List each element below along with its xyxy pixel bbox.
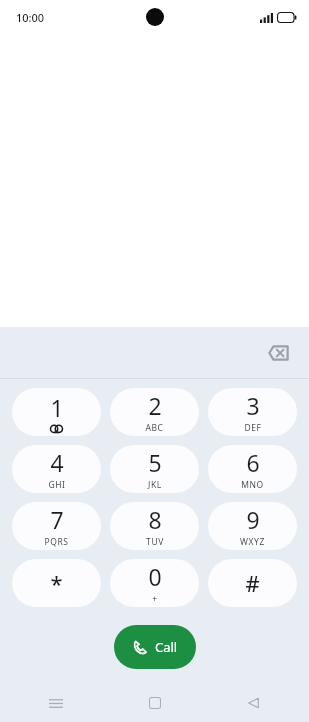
button[interactable]: 5 (110, 445, 199, 493)
staticText: 5 (148, 447, 162, 478)
staticText: WXYZ (240, 536, 265, 548)
staticText: 2 (148, 390, 162, 421)
button[interactable]: # (208, 559, 297, 607)
staticText: TUV (146, 536, 164, 548)
staticText: 1 (50, 392, 64, 423)
button[interactable]: 7 (12, 502, 101, 550)
button[interactable]: * (12, 559, 101, 607)
staticText: DEF (244, 422, 262, 434)
staticText: ABC (145, 422, 164, 434)
staticText: 3 (246, 390, 260, 421)
staticText: 8 (148, 504, 162, 535)
button[interactable]: Backspace (261, 336, 295, 370)
button[interactable]: 4 (12, 445, 101, 493)
button[interactable]: 9 (208, 502, 297, 550)
staticText: 9 (246, 504, 260, 535)
staticText: 4 (50, 447, 64, 478)
button[interactable]: 6 (208, 445, 297, 493)
button[interactable]: 0 (110, 559, 199, 607)
staticText: # (245, 568, 260, 598)
staticText: MNO (241, 479, 264, 491)
staticText: 0 (148, 561, 162, 592)
staticText: 10:00 (16, 10, 45, 25)
button[interactable]: 2 (110, 388, 199, 436)
staticText: JKL (148, 479, 162, 491)
staticText: Call (155, 638, 178, 656)
button[interactable]: 8 (110, 502, 199, 550)
button[interactable]: Recents (38, 685, 74, 721)
staticText: * (50, 568, 63, 598)
button[interactable]: 1 (12, 388, 101, 436)
button[interactable]: Back (235, 685, 271, 721)
staticText: 6 (246, 447, 260, 478)
staticText: PQRS (44, 536, 69, 548)
staticText: + (152, 593, 158, 605)
staticText: GHI (48, 479, 66, 491)
button[interactable]: Call (114, 625, 196, 669)
button[interactable]: 3 (208, 388, 297, 436)
staticText: 7 (50, 504, 64, 535)
button[interactable]: Home (137, 685, 173, 721)
